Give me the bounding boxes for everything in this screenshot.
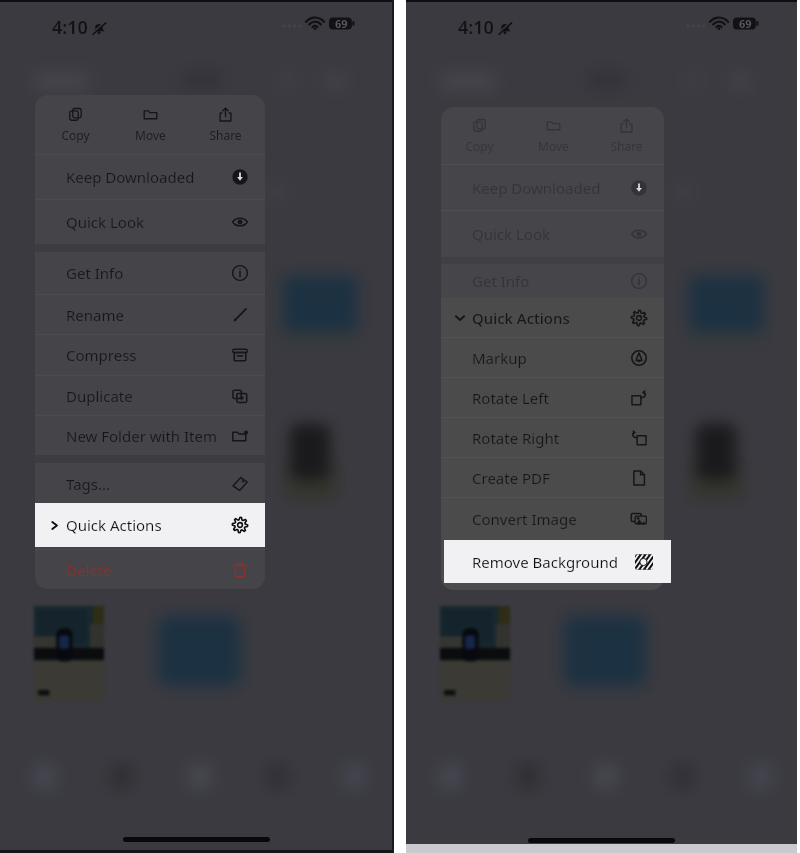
- button[interactable]: Rename: [35, 295, 265, 334]
- button[interactable]: Quick Actions: [441, 298, 664, 337]
- staticText: Share: [209, 127, 242, 143]
- staticText: Copy: [61, 127, 90, 143]
- button[interactable]: Duplicate: [35, 376, 265, 415]
- button[interactable]: Rotate Left: [441, 378, 664, 417]
- button[interactable]: Tags...: [35, 463, 265, 504]
- button[interactable]: Get Info: [35, 252, 265, 294]
- staticText: Quick Look: [472, 224, 550, 244]
- staticText: Quick Actions: [472, 308, 570, 328]
- button[interactable]: Remove Background: [444, 540, 671, 583]
- staticText: 4:10: [52, 15, 88, 40]
- staticText: Keep Downloaded: [66, 167, 195, 187]
- button[interactable]: Convert Image: [441, 498, 664, 539]
- staticText: Move: [135, 127, 166, 143]
- staticText: Copy: [465, 138, 494, 154]
- staticText: Create PDF: [472, 468, 550, 488]
- staticText: Compress: [66, 345, 137, 365]
- staticText: Convert Image: [472, 509, 577, 529]
- staticText: Move: [538, 138, 569, 154]
- button[interactable]: Copy: [40, 95, 110, 154]
- staticText: 4:10: [458, 15, 494, 40]
- staticText: Markup: [472, 348, 527, 368]
- staticText: Rotate Right: [472, 428, 560, 448]
- button[interactable]: Recents: [416, 756, 490, 798]
- staticText: 69: [739, 16, 752, 31]
- button[interactable]: Rotate Right: [441, 418, 664, 457]
- button[interactable]: Markup: [441, 338, 664, 377]
- staticText: New Folder with Item: [66, 426, 217, 446]
- staticText: Rotate Left: [472, 388, 549, 408]
- button[interactable]: Search: [308, 756, 383, 798]
- button[interactable]: Share: [190, 95, 260, 154]
- button[interactable]: Browse: [158, 756, 233, 798]
- staticText: Quick Actions: [66, 515, 162, 535]
- button[interactable]: Keep Downloaded: [441, 165, 664, 210]
- staticText: Keep Downloaded: [472, 178, 601, 198]
- staticText: Rename: [66, 305, 124, 325]
- staticText: Share: [610, 138, 643, 154]
- staticText: Delete: [66, 560, 112, 580]
- staticText: Remove Background: [472, 552, 618, 572]
- button[interactable]: Create PDF: [441, 458, 664, 497]
- staticText: 69: [335, 16, 348, 31]
- button[interactable]: Delete: [35, 550, 265, 589]
- button[interactable]: Move: [115, 95, 185, 154]
- button[interactable]: Compress: [35, 335, 265, 375]
- button[interactable]: Quick Actions: [35, 503, 265, 547]
- button[interactable]: Browse: [564, 756, 639, 798]
- button[interactable]: Keep Downloaded: [35, 155, 265, 199]
- staticText: Tags...: [66, 474, 111, 494]
- staticText: Duplicate: [66, 386, 133, 406]
- staticText: Quick Look: [66, 212, 144, 232]
- staticText: Get Info: [66, 263, 124, 283]
- button[interactable]: Search: [714, 756, 789, 798]
- button[interactable]: Quick Look: [35, 200, 265, 244]
- button[interactable]: New Folder with Item: [35, 416, 265, 455]
- staticText: Get Info: [472, 271, 530, 291]
- button[interactable]: Recents: [10, 756, 84, 798]
